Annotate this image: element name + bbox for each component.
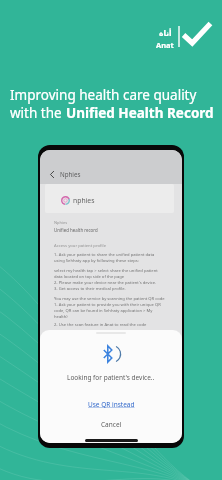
staticText: Looking for patient's device..	[67, 373, 155, 382]
staticText: Nphies	[54, 220, 68, 225]
button[interactable]: Cancel	[101, 420, 122, 429]
staticText: Cancel	[101, 420, 122, 429]
staticText: Unified Health Record	[66, 104, 214, 122]
staticText: select my health tap > select share the …	[54, 268, 158, 274]
staticText: health)	[54, 314, 68, 320]
staticText: Anat	[156, 40, 174, 50]
staticText: Use QR instead	[88, 400, 135, 409]
staticText: Nphies	[60, 170, 81, 178]
staticText: Unified health record	[54, 227, 98, 233]
staticText: أناة	[159, 29, 172, 38]
other: Back	[50, 171, 54, 178]
staticText: using Sehhaty app by following these ste…	[54, 258, 139, 264]
staticText: You may use the service by scanning the …	[54, 296, 165, 302]
button[interactable]: Use QR instead	[88, 400, 135, 409]
staticText: Improving health care quality	[10, 86, 197, 104]
staticText: 3- Get access to their medical profile.	[54, 286, 126, 292]
staticText: data located on top side of the page	[54, 274, 125, 280]
staticText: with the	[10, 104, 66, 122]
staticText: 1- Ask your patient to share the unified…	[54, 252, 155, 258]
button[interactable]: nphies	[45, 184, 174, 213]
staticText: code, QR can be found in Sehhaty applica…	[54, 308, 153, 314]
staticText: 2- Use the scan feature in Anat to read …	[54, 322, 147, 328]
staticText: 2- Please make your device near the pati…	[54, 280, 157, 286]
button[interactable]: Anat logo	[152, 18, 214, 52]
staticText: nphies	[73, 196, 95, 205]
staticText: 1- Ask your patient to provide you with …	[54, 302, 161, 308]
button[interactable]: Back	[40, 164, 182, 184]
staticText: Access your patient profile	[54, 243, 107, 249]
